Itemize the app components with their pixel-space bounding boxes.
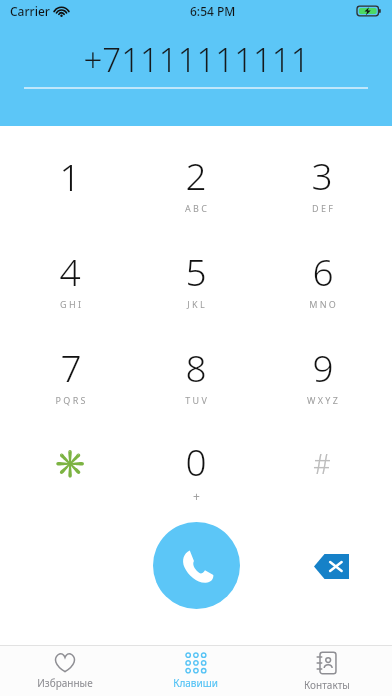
- staticText: +71111111111: [83, 37, 310, 82]
- staticText: G H I: [60, 298, 81, 310]
- button[interactable]: ✳: [14, 422, 126, 518]
- staticText: 1: [59, 151, 81, 201]
- staticText: 4: [59, 246, 81, 296]
- button[interactable]: Call: [153, 522, 240, 609]
- button[interactable]: 5: [140, 230, 252, 326]
- button[interactable]: 6: [266, 230, 378, 326]
- button[interactable]: 9: [266, 326, 378, 422]
- staticText: 3: [311, 150, 333, 200]
- staticText: Контакты: [304, 678, 350, 692]
- button[interactable]: 0: [140, 422, 252, 518]
- button[interactable]: Избранные: [0, 646, 130, 696]
- staticText: P Q R S: [55, 394, 86, 406]
- button[interactable]: 7: [14, 326, 126, 422]
- staticText: Клавиши: [173, 676, 218, 690]
- staticText: ✳: [53, 448, 87, 480]
- staticText: 6:54 PM: [190, 3, 236, 19]
- staticText: 5: [185, 246, 207, 296]
- staticText: J K L: [187, 298, 205, 310]
- staticText: 9: [312, 342, 334, 392]
- staticText: W X Y Z: [307, 394, 338, 406]
- button[interactable]: Контакты: [261, 646, 392, 696]
- staticText: T U V: [185, 394, 207, 406]
- staticText: 6: [312, 246, 334, 296]
- button[interactable]: Delete: [308, 543, 354, 589]
- staticText: 0: [185, 436, 207, 486]
- staticText: 7: [60, 342, 82, 392]
- button[interactable]: Клавиши: [130, 646, 261, 696]
- staticText: A B C: [185, 202, 207, 214]
- staticText: Carrier: [10, 3, 50, 19]
- staticText: Избранные: [37, 676, 93, 690]
- staticText: D E F: [312, 202, 333, 214]
- staticText: 2: [185, 150, 207, 200]
- button[interactable]: 3: [266, 134, 378, 230]
- button[interactable]: #: [266, 422, 378, 518]
- staticText: M N O: [309, 298, 336, 310]
- button[interactable]: 4: [14, 230, 126, 326]
- staticText: 8: [185, 342, 207, 392]
- button[interactable]: 8: [140, 326, 252, 422]
- button[interactable]: 2: [140, 134, 252, 230]
- staticText: #: [313, 445, 331, 482]
- button[interactable]: 1: [14, 134, 126, 230]
- staticText: +: [193, 488, 200, 504]
